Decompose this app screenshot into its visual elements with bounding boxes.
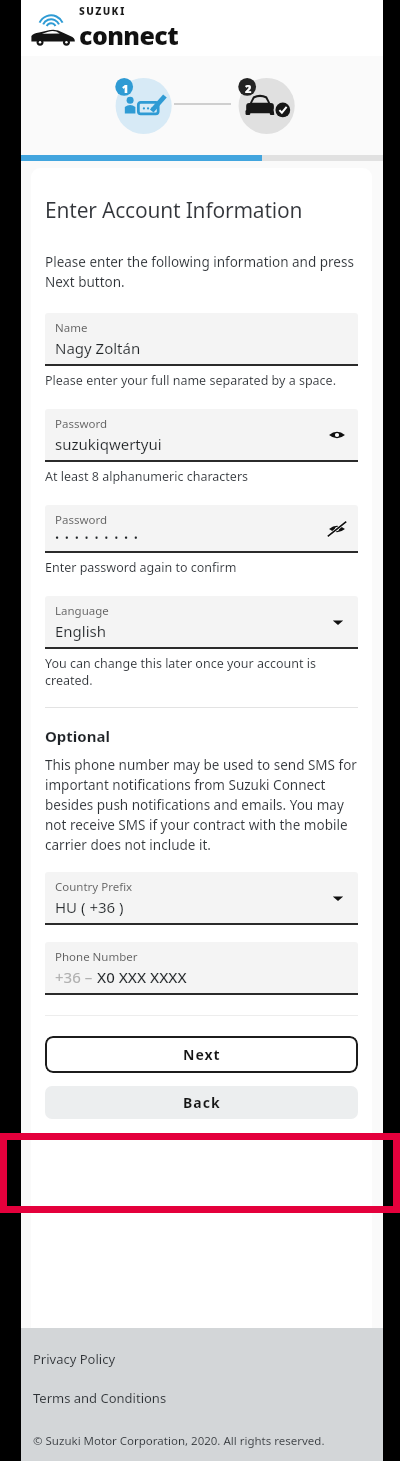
staticText: Next: [183, 1045, 221, 1064]
staticText: Enter Account Information: [45, 196, 303, 225]
staticText: X0 XXX XXXX: [97, 967, 187, 987]
staticText: HU ( +36 ): [55, 897, 124, 917]
staticText: +36 –: [55, 967, 97, 987]
button[interactable]: Back: [45, 1086, 358, 1119]
staticText: You can change this later once your acco…: [45, 655, 358, 689]
staticText: • • • • • • • • •: [55, 530, 138, 545]
staticText: Please enter the following information a…: [45, 253, 358, 291]
button[interactable]: Name: [45, 313, 358, 366]
button[interactable]: Step 1: [108, 71, 174, 137]
button[interactable]: Password: [45, 409, 358, 462]
staticText: English: [55, 621, 107, 641]
button[interactable]: Language: [45, 596, 358, 649]
button[interactable]: Privacy Policy: [33, 1350, 371, 1368]
staticText: Name: [55, 320, 88, 336]
staticText: Phone Number: [55, 949, 138, 965]
staticText: Password: [55, 512, 108, 528]
staticText: 2: [245, 81, 252, 93]
button[interactable]: Open Country Prefix dropdown: [328, 888, 348, 908]
staticText: Country Prefix: [55, 879, 133, 895]
button[interactable]: Terms and Conditions: [33, 1389, 371, 1407]
staticText: 1: [122, 81, 129, 93]
staticText: This phone number may be used to send SM…: [45, 756, 358, 854]
button[interactable]: Country Prefix: [45, 872, 358, 925]
button[interactable]: Password: [45, 505, 358, 553]
button[interactable]: Hide password: [326, 424, 348, 446]
staticText: suzukiqwertyui: [55, 434, 162, 454]
staticText: Back: [183, 1093, 221, 1112]
button[interactable]: Show password: [326, 518, 348, 540]
staticText: connect: [79, 18, 179, 52]
staticText: Enter password again to confirm: [45, 559, 237, 576]
staticText: Please enter your full name separated by…: [45, 372, 336, 389]
staticText: Optional: [45, 726, 110, 746]
button[interactable]: Open Language dropdown: [328, 612, 348, 632]
button[interactable]: Phone Number: [45, 942, 358, 995]
button[interactable]: Step 2: [231, 71, 297, 137]
staticText: Password: [55, 416, 108, 432]
staticText: Privacy Policy: [33, 1350, 116, 1368]
staticText: SUZUKI: [79, 4, 126, 18]
staticText: At least 8 alphanumeric characters: [45, 468, 249, 485]
staticText: Terms and Conditions: [33, 1389, 167, 1407]
staticText: Language: [55, 603, 109, 619]
staticText: © Suzuki Motor Corporation, 2020. All ri…: [33, 1433, 325, 1449]
staticText: Nagy Zoltán: [55, 338, 141, 358]
button[interactable]: Next: [45, 1036, 358, 1073]
